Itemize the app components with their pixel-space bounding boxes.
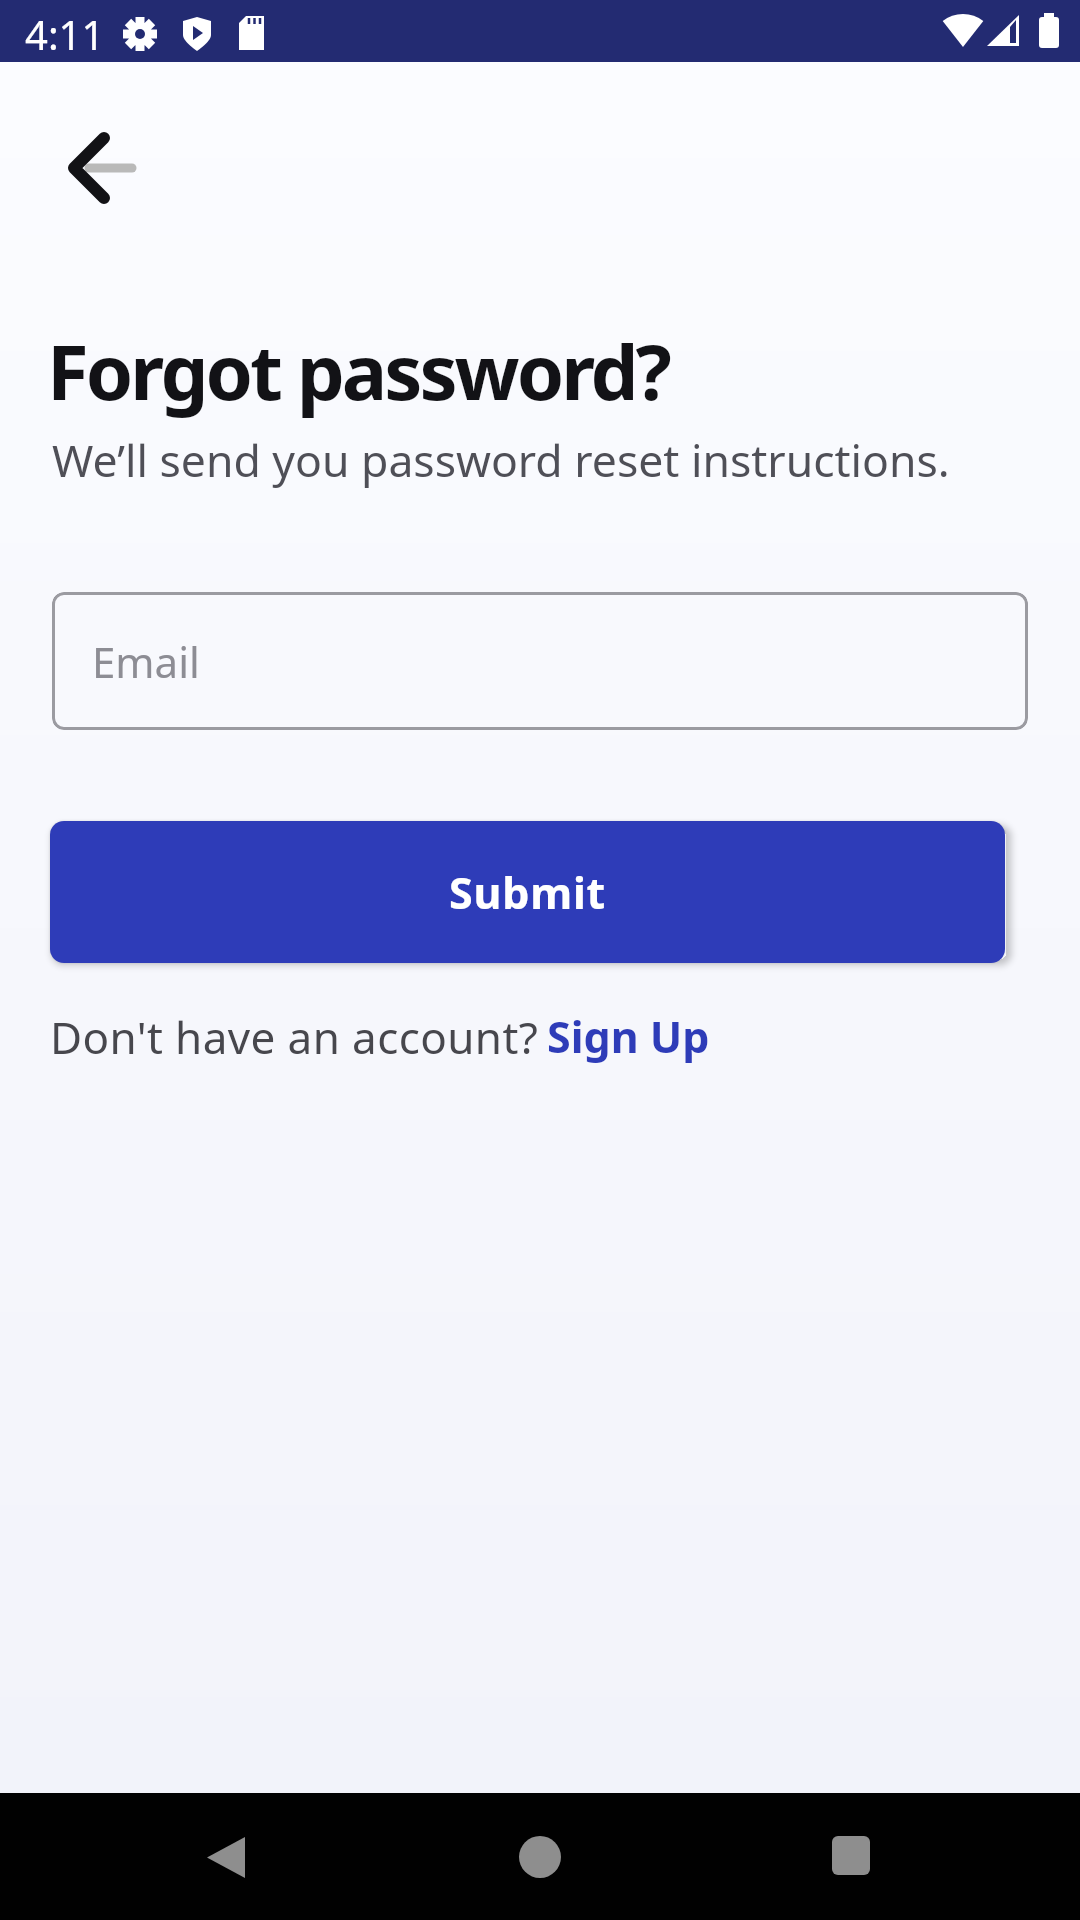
button[interactable] bbox=[516, 1833, 564, 1881]
button[interactable]: Sign Up bbox=[547, 1007, 710, 1066]
staticText: 4:11 bbox=[25, 7, 105, 61]
button[interactable] bbox=[828, 1834, 874, 1880]
button[interactable]: Email bbox=[52, 592, 1028, 730]
button[interactable] bbox=[64, 128, 144, 208]
button[interactable] bbox=[199, 1830, 253, 1884]
staticText: Forgot password? bbox=[47, 319, 669, 423]
staticText: Email bbox=[92, 633, 200, 690]
button[interactable]: Submit bbox=[50, 821, 1005, 963]
staticText: Don't have an account? bbox=[50, 1007, 539, 1067]
staticText: Submit bbox=[449, 863, 607, 922]
staticText: We’ll send you password reset instructio… bbox=[52, 429, 950, 490]
